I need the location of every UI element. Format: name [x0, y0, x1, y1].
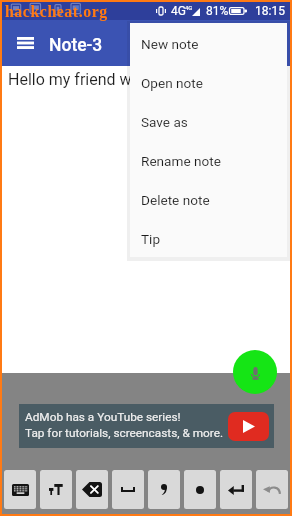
button[interactable]: Undo — [256, 470, 288, 509]
staticText: AdMob has a YouTube series! — [25, 410, 181, 424]
button[interactable]: Open note — [130, 62, 287, 101]
button[interactable]: Keyboard — [4, 470, 36, 509]
button[interactable]: Enter — [220, 470, 252, 509]
staticText: Tap for tutorials, screencasts, & more. — [25, 426, 224, 440]
staticText: 81% — [206, 4, 229, 18]
button[interactable]: Text size — [40, 470, 72, 509]
button[interactable]: Backspace — [76, 470, 108, 509]
staticText: 4G — [171, 4, 186, 18]
staticText: hackcheat.org — [5, 3, 108, 20]
staticText: Note-3 — [49, 35, 103, 56]
button[interactable]: Comma — [148, 470, 180, 509]
button[interactable]: Delete note — [130, 179, 287, 218]
button[interactable]: Tip — [130, 218, 287, 257]
button[interactable]: AdMob has a YouTube series! — [19, 404, 274, 448]
button[interactable]: Open navigation drawer — [11, 29, 39, 57]
staticText: 4G — [185, 4, 193, 11]
staticText: Hello my friend what is it — [8, 70, 184, 89]
staticText: New note — [141, 36, 199, 52]
button[interactable]: Save as — [130, 101, 287, 140]
button[interactable]: New note — [130, 23, 287, 62]
staticText: Delete note — [141, 192, 210, 208]
staticText: Rename note — [141, 153, 221, 169]
button[interactable]: Period — [184, 470, 216, 509]
staticText: 18:15 — [255, 4, 285, 18]
button[interactable]: Rename note — [130, 140, 287, 179]
button[interactable]: Voice input — [233, 350, 277, 394]
staticText: Save as — [141, 114, 188, 130]
button[interactable]: Space — [112, 470, 144, 509]
button[interactable]: Play video — [228, 412, 269, 441]
staticText: Tip — [141, 231, 161, 247]
staticText: Open note — [141, 75, 203, 91]
